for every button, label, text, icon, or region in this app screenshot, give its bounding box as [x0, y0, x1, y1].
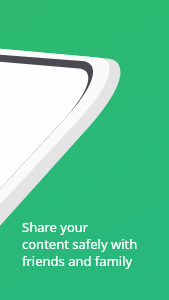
staticText: Share your content safely with friends a…	[22, 218, 138, 270]
